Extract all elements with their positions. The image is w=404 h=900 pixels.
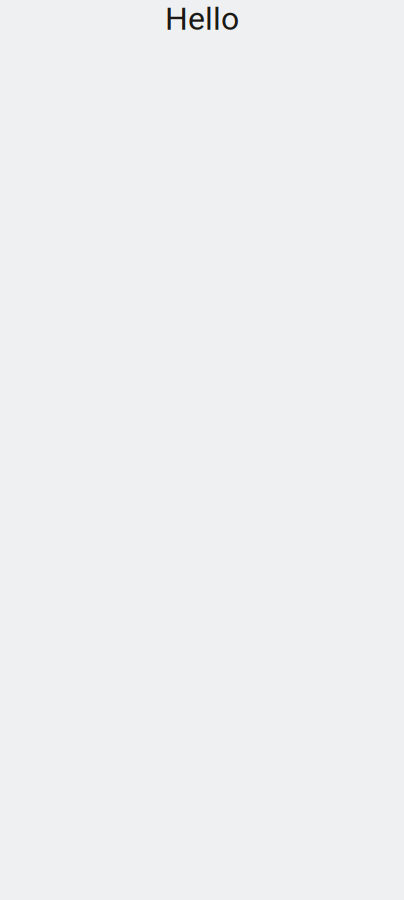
staticText: Hello xyxy=(165,0,239,37)
